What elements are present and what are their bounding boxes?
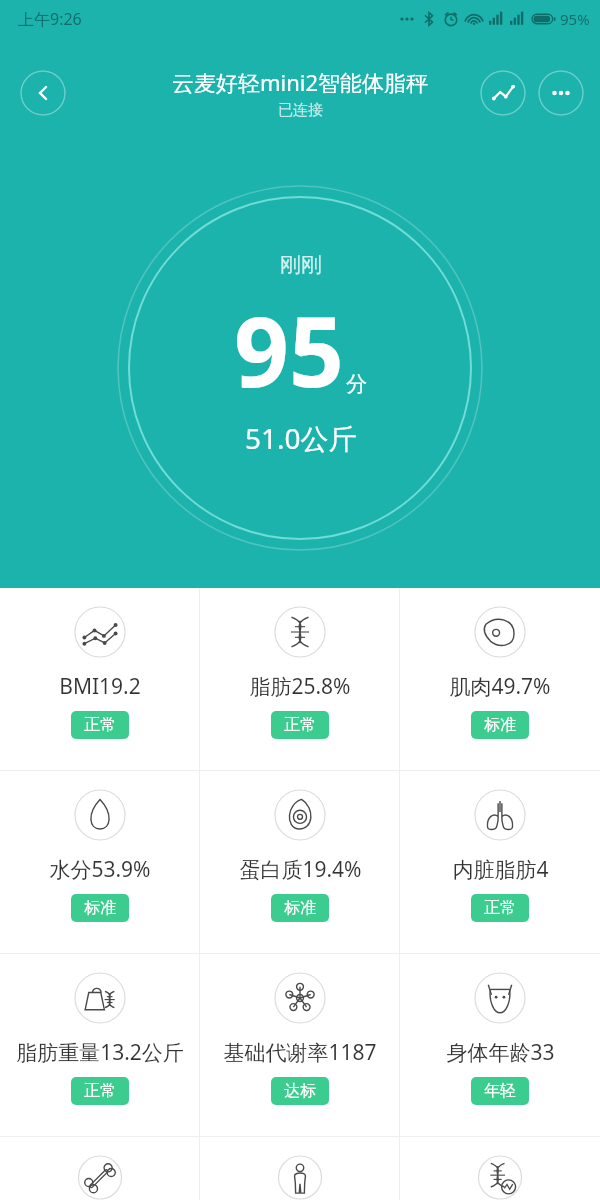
button[interactable]: Back <box>20 70 66 116</box>
button[interactable]: 身体年龄33 <box>400 954 600 1136</box>
staticText: 正常 <box>284 715 316 735</box>
button[interactable]: 基础代谢率1187 <box>200 954 400 1136</box>
staticText: 刚刚 <box>280 252 322 278</box>
staticText: 已连接 <box>278 101 323 120</box>
staticText: 51.0公斤 <box>245 419 357 457</box>
staticText: 年轻 <box>484 1081 516 1101</box>
staticText: 云麦好轻mini2智能体脂秤 <box>172 67 429 97</box>
staticText: 标准 <box>284 898 316 918</box>
staticText: 正常 <box>484 898 516 918</box>
button[interactable]: BMI19.2 <box>0 588 200 770</box>
staticText: BMI19.2 <box>59 672 141 701</box>
staticText: 正常 <box>84 715 116 735</box>
button[interactable] <box>200 1137 400 1200</box>
staticText: 分 <box>346 371 367 397</box>
staticText: 基础代谢率1187 <box>223 1038 377 1067</box>
button[interactable]: 蛋白质19.4% <box>200 771 400 953</box>
staticText: 标准 <box>84 898 116 918</box>
staticText: 脂肪25.8% <box>249 672 351 701</box>
staticText: 正常 <box>84 1081 116 1101</box>
button[interactable] <box>0 1137 200 1200</box>
staticText: 脂肪重量13.2公斤 <box>16 1038 184 1067</box>
staticText: 标准 <box>484 715 516 735</box>
button[interactable]: 脂肪25.8% <box>200 588 400 770</box>
staticText: 肌肉49.7% <box>449 672 551 701</box>
staticText: 达标 <box>284 1081 316 1101</box>
staticText: 内脏脂肪4 <box>452 855 549 884</box>
button[interactable]: 肌肉49.7% <box>400 588 600 770</box>
button[interactable] <box>400 1137 600 1200</box>
staticText: 蛋白质19.4% <box>239 855 362 884</box>
staticText: 上午9:26 <box>18 8 82 30</box>
button[interactable]: More options <box>538 70 584 116</box>
staticText: 水分53.9% <box>49 855 151 884</box>
button[interactable]: 内脏脂肪4 <box>400 771 600 953</box>
button[interactable]: Trend chart <box>480 70 526 116</box>
button[interactable]: 脂肪重量13.2公斤 <box>0 954 200 1136</box>
button[interactable]: 水分53.9% <box>0 771 200 953</box>
staticText: 95% <box>560 9 590 29</box>
staticText: 身体年龄33 <box>446 1038 555 1067</box>
staticText: 95 <box>234 284 344 415</box>
